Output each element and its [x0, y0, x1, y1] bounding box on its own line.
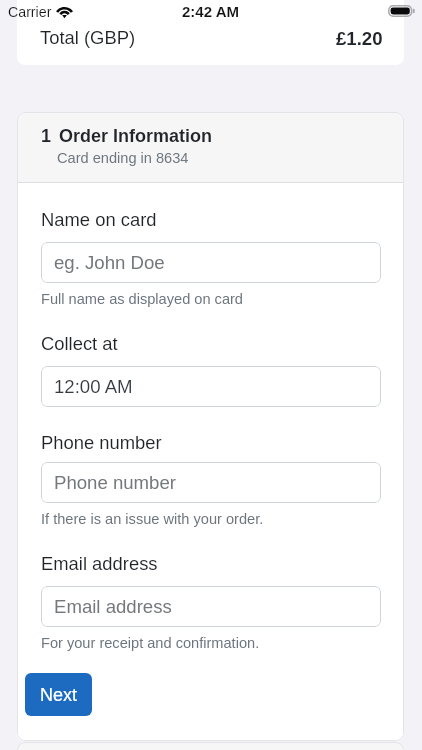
staticText: Card ending in 8634: [57, 150, 189, 166]
button[interactable]: eg. John Doe: [41, 242, 381, 283]
staticText: 1: [41, 126, 52, 146]
staticText: Phone number: [41, 432, 162, 453]
staticText: eg. John Doe: [54, 252, 165, 273]
button[interactable]: 1: [17, 112, 404, 182]
staticText: Phone number: [54, 472, 176, 493]
button[interactable]: [17, 742, 404, 750]
staticText: 12:00 AM: [54, 376, 133, 397]
staticText: Next: [40, 685, 78, 705]
staticText: Email address: [54, 596, 172, 617]
staticText: Name on card: [41, 209, 157, 230]
button[interactable]: Phone number: [41, 462, 381, 503]
staticText: Carrier: [8, 4, 52, 20]
staticText: Total (GBP): [40, 27, 136, 48]
staticText: 2:42 AM: [182, 3, 239, 20]
staticText: If there is an issue with your order.: [41, 511, 264, 527]
staticText: Full name as displayed on card: [41, 291, 243, 307]
button[interactable]: Total (GBP): [17, 0, 404, 65]
staticText: Email address: [41, 553, 158, 574]
other: Wi-Fi signal: [55, 4, 74, 18]
staticText: For your receipt and confirmation.: [41, 635, 260, 651]
staticText: Order Information: [59, 126, 213, 146]
button[interactable]: 12:00 AM: [41, 366, 381, 407]
button[interactable]: Email address: [41, 586, 381, 627]
button[interactable]: Next: [25, 673, 92, 716]
other: Battery full: [388, 5, 415, 17]
staticText: £1.20: [336, 28, 383, 49]
staticText: Collect at: [41, 333, 118, 354]
